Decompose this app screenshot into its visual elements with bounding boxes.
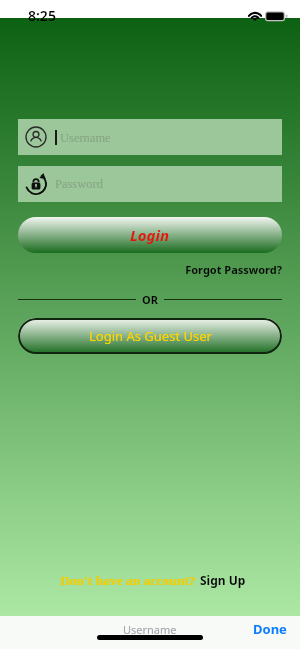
staticText: Login As Guest User — [89, 327, 212, 345]
staticText: Username — [123, 622, 177, 637]
staticText: 8:25 — [28, 6, 56, 25]
staticText: Don't have an account? — [60, 573, 196, 588]
button[interactable]: Username — [18, 119, 282, 155]
button[interactable]: Done — [253, 620, 287, 638]
staticText: Login — [130, 225, 170, 245]
staticText: Forgot Password? — [0, 262, 282, 277]
button[interactable]: Sign Up — [200, 572, 246, 588]
staticText: Username — [60, 131, 111, 145]
button[interactable]: Password — [18, 166, 282, 202]
button[interactable]: Login — [18, 217, 282, 253]
button[interactable]: Login As Guest User — [18, 318, 282, 354]
staticText: Password — [55, 177, 103, 191]
staticText: OR — [142, 292, 158, 307]
staticText: Sign Up — [200, 572, 246, 588]
